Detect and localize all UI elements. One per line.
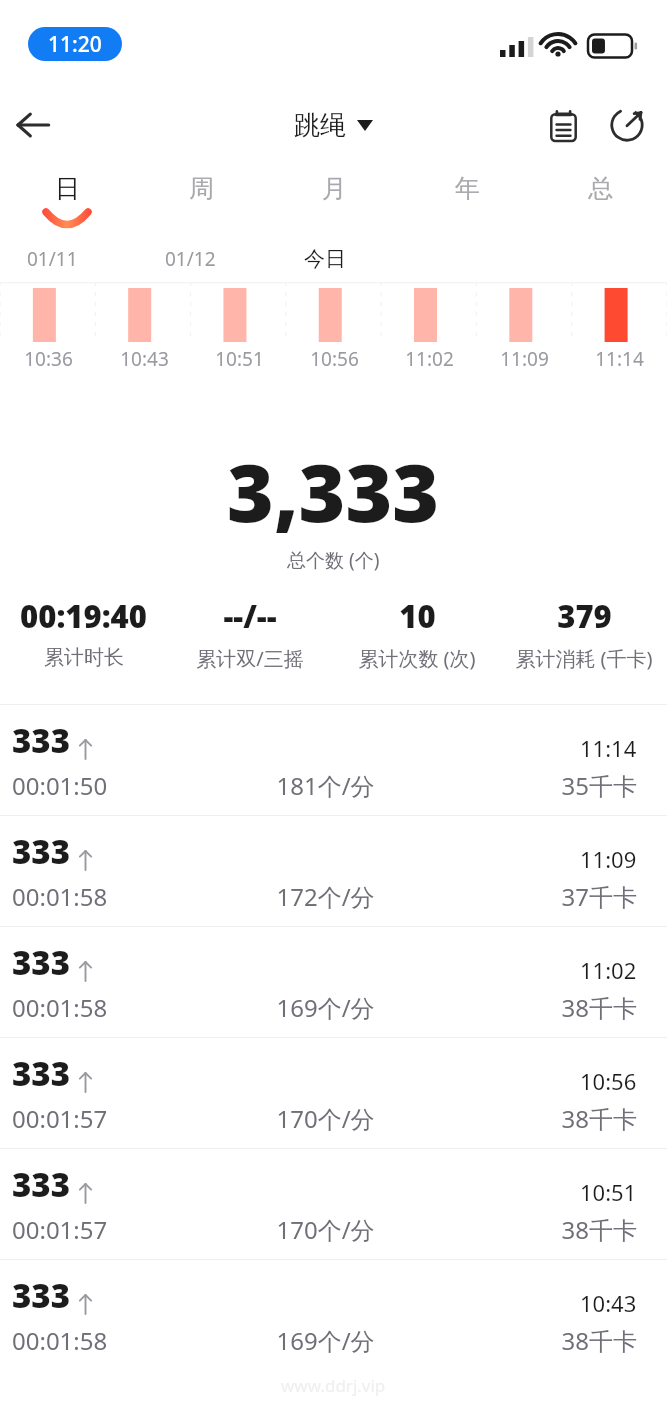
staticText: 日 [55,173,80,204]
staticText: 333 [12,829,71,874]
staticText: 跳绳 [294,109,346,142]
staticText: 10:43 [580,1288,637,1318]
button[interactable]: 月 [268,162,401,238]
button[interactable]: Records [535,88,591,162]
staticText: 10:43 [120,346,169,372]
staticText: 38千卡 [561,991,637,1024]
staticText: 01/12 [165,246,216,272]
staticText: --/-- [223,595,277,637]
staticText: 00:19:40 [20,595,147,637]
staticText: 38千卡 [561,1324,637,1357]
button[interactable]: 333 [0,1038,667,1148]
staticText: 169个/分 [276,1324,375,1357]
staticText: 11:20 [48,30,102,59]
button[interactable]: 总 [534,162,667,238]
staticText: 11:02 [405,346,454,372]
staticText: 333 [12,1051,71,1096]
staticText: 00:01:58 [12,880,108,913]
staticText: 10:56 [310,346,359,372]
staticText: 周 [189,173,214,204]
staticText: 10:36 [24,346,73,372]
staticText: 总个数 (个) [287,547,380,573]
staticText: 181个/分 [276,769,375,802]
button[interactable]: 日 [0,162,134,238]
button[interactable]: 333 [0,927,667,1037]
staticText: 11:02 [580,955,637,985]
staticText: 11:14 [595,346,644,372]
staticText: 01/11 [27,246,78,272]
staticText: www.ddrj.vip [281,1374,386,1397]
staticText: 累计双/三摇 [196,645,304,672]
staticText: 00:01:58 [12,991,108,1024]
staticText: 3,333 [227,436,440,545]
staticText: 11:09 [580,844,637,874]
staticText: 10:56 [580,1066,637,1096]
staticText: 累计次数 (次) [358,645,476,672]
staticText: 10:51 [215,346,264,372]
staticText: 累计消耗 (千卡) [515,645,653,672]
staticText: 172个/分 [276,880,375,913]
staticText: 333 [12,940,71,985]
staticText: 170个/分 [276,1213,375,1246]
staticText: 10 [399,595,436,637]
button[interactable]: 333 [0,1260,667,1370]
button[interactable]: 333 [0,705,667,815]
staticText: 00:01:57 [12,1213,108,1246]
staticText: 今日 [304,246,346,272]
staticText: 累计时长 [44,645,124,670]
staticText: 379 [557,595,612,637]
staticText: 月 [322,173,347,204]
staticText: 333 [12,718,71,763]
staticText: 总 [588,173,613,204]
staticText: 00:01:50 [12,769,108,802]
button[interactable]: 周 [134,162,268,238]
button[interactable]: Share [599,88,655,162]
staticText: 10:51 [580,1177,637,1207]
staticText: 年 [455,173,480,204]
button[interactable]: 333 [0,1149,667,1259]
staticText: 333 [12,1273,71,1318]
staticText: 00:01:57 [12,1102,108,1135]
staticText: 38千卡 [561,1102,637,1135]
button[interactable]: 333 [0,816,667,926]
staticText: 00:01:58 [12,1324,108,1357]
button[interactable]: 跳绳 [294,109,373,142]
staticText: 35千卡 [561,769,637,802]
staticText: 169个/分 [276,991,375,1024]
staticText: 37千卡 [561,880,637,913]
staticText: 333 [12,1162,71,1207]
button[interactable]: Back [2,88,64,162]
staticText: 11:09 [500,346,549,372]
staticText: 170个/分 [276,1102,375,1135]
button[interactable]: 年 [401,162,534,238]
staticText: 38千卡 [561,1213,637,1246]
staticText: 11:14 [580,733,637,763]
